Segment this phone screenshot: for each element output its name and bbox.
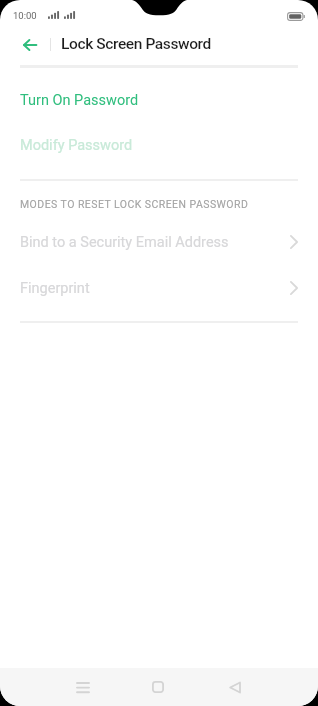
button[interactable]: Turn On Password [0,88,318,112]
button[interactable] [61,668,105,706]
button[interactable] [136,668,180,706]
button[interactable]: Modify Password [0,133,318,157]
staticText: Bind to a Security Email Address [20,234,229,251]
button[interactable] [8,28,52,62]
staticText: MODES TO RESET LOCK SCREEN PASSWORD [20,198,249,210]
button[interactable]: Bind to a Security Email Address [0,230,318,254]
button[interactable]: Fingerprint [0,276,318,300]
staticText: Turn On Password [20,92,139,109]
staticText: 10:00 [13,10,37,21]
staticText: Fingerprint [20,280,90,297]
staticText: Lock Screen Password [61,35,211,53]
staticText: Modify Password [20,137,133,154]
button[interactable] [213,668,257,706]
